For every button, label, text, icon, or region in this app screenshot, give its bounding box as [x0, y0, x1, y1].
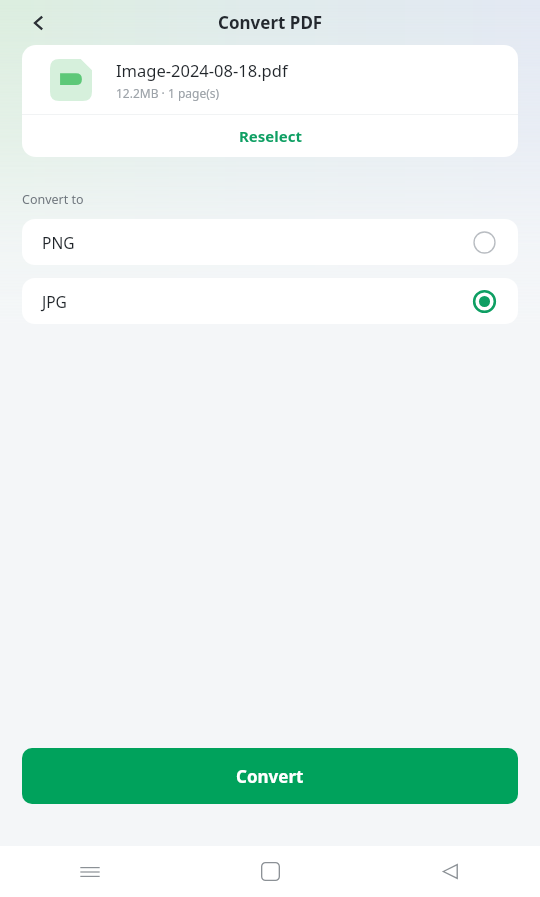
button[interactable]: Recent apps — [0, 846, 180, 897]
button[interactable]: PNG — [22, 219, 518, 265]
button[interactable]: Reselect — [22, 115, 518, 157]
button[interactable]: Convert — [22, 748, 518, 804]
staticText: Convert PDF — [218, 11, 323, 34]
button[interactable]: Home — [180, 846, 360, 897]
staticText: Reselect — [239, 126, 302, 146]
staticText: JPG — [42, 291, 67, 312]
button[interactable]: Image-2024-08-18.pdf — [22, 45, 518, 114]
staticText: 12.2MB · 1 page(s) — [116, 85, 220, 101]
button[interactable]: JPG — [22, 278, 518, 324]
staticText: Convert to — [22, 191, 84, 208]
staticText: Image-2024-08-18.pdf — [116, 59, 288, 81]
button[interactable]: Back — [360, 846, 540, 897]
button[interactable]: Back — [18, 2, 60, 44]
staticText: Convert — [236, 765, 304, 788]
staticText: PNG — [42, 232, 75, 253]
